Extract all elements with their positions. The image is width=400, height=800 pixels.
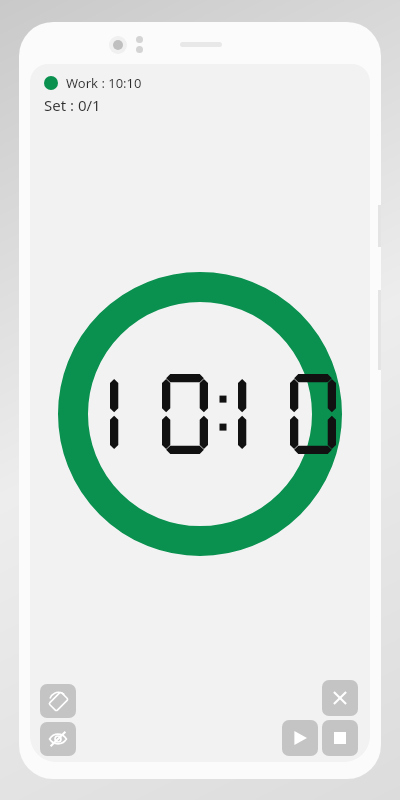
button[interactable]: Play	[282, 720, 318, 756]
staticText: Work : 10:10	[66, 74, 142, 92]
staticText: Set : 0/1	[44, 95, 101, 115]
button[interactable]: Rotate screen	[40, 684, 76, 718]
button[interactable]: Close	[322, 680, 358, 716]
button[interactable]: Hide	[40, 722, 76, 756]
button[interactable]: Stop	[322, 720, 358, 756]
